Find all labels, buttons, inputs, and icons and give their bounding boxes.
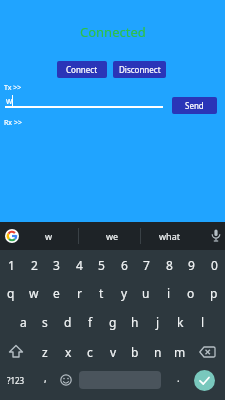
button[interactable]: f [79,309,101,335]
button[interactable] [194,370,215,391]
button[interactable]: a [12,309,34,335]
button[interactable]: m [169,339,191,365]
staticText: v [110,344,117,360]
staticText: a [20,314,27,330]
staticText: e [53,285,60,301]
staticText: Connect [66,64,98,75]
button[interactable]: ?123 [2,367,30,393]
button[interactable]: d [57,309,79,335]
staticText: z [42,344,48,360]
button[interactable]: x [57,339,79,365]
staticText: 2 [31,257,38,273]
staticText: r [77,285,82,301]
staticText: 6 [121,257,128,273]
button[interactable]: k [169,309,191,335]
staticText: Tx >> [4,83,22,93]
button[interactable]: Disconnect [113,61,166,78]
staticText: 1 [8,257,15,273]
button[interactable]: Connect [57,61,107,78]
staticText: s [42,314,48,330]
staticText: w [29,285,39,301]
staticText: f [88,314,93,330]
staticText: ?123 [7,375,25,386]
staticText: we [106,230,119,242]
staticText: g [109,314,117,330]
button[interactable]: r [68,280,90,306]
button[interactable]: 5 [90,252,112,278]
staticText: o [187,285,195,301]
button[interactable]: , [34,365,56,391]
staticText: Rx >> [4,118,22,128]
staticText: x [65,344,72,360]
staticText: y [121,285,128,301]
staticText: c [87,344,93,360]
button[interactable]: n [147,339,169,365]
button[interactable]: . [167,365,189,391]
staticText: 8 [166,257,173,273]
button[interactable]: w [23,280,45,306]
button[interactable] [55,369,77,391]
staticText: 7 [143,257,150,273]
staticText: k [177,314,184,330]
staticText: . [177,371,180,385]
button[interactable]: g [102,309,124,335]
button[interactable]: 1 [0,252,22,278]
staticText: d [64,314,72,330]
staticText: n [154,344,162,360]
staticText: w [6,95,13,106]
staticText: w [45,230,53,242]
staticText: Connected [80,23,146,37]
button[interactable]: l [192,309,214,335]
button[interactable]: t [90,280,112,306]
staticText: j [156,314,160,330]
staticText: p [210,285,218,301]
staticText: , [44,371,47,385]
button[interactable]: y [113,280,135,306]
staticText: h [131,314,139,330]
button[interactable]: 7 [135,252,157,278]
staticText: m [174,344,186,360]
staticText: i [167,285,171,301]
staticText: b [131,344,139,360]
button[interactable]: v [102,339,124,365]
staticText: u [142,285,150,301]
staticText: 9 [188,257,195,273]
button[interactable]: 8 [158,252,180,278]
button[interactable]: c [79,339,101,365]
button[interactable]: s [34,309,56,335]
button[interactable]: b [124,339,146,365]
button[interactable]: i [158,280,180,306]
button[interactable]: what [158,223,180,249]
staticText: 3 [53,257,60,273]
button[interactable]: w [38,223,60,249]
button[interactable] [4,340,28,364]
button[interactable]: e [45,280,67,306]
button[interactable]: o [180,280,202,306]
button[interactable]: q [0,280,22,306]
button[interactable]: u [135,280,157,306]
button[interactable]: we [101,223,123,249]
button[interactable]: 2 [23,252,45,278]
staticText: 0 [211,257,218,273]
staticText: 4 [76,257,83,273]
staticText: what [159,230,180,242]
button[interactable]: h [124,309,146,335]
button[interactable]: Send [172,97,217,114]
staticText: t [99,285,104,301]
staticText: 5 [98,257,105,273]
button[interactable]: 3 [45,252,67,278]
button[interactable]: j [147,309,169,335]
staticText: Disconnect [119,64,161,75]
staticText: Send [185,100,204,111]
button[interactable]: 0 [203,252,225,278]
button[interactable]: 4 [68,252,90,278]
button[interactable]: 9 [180,252,202,278]
button[interactable] [196,341,220,363]
staticText: l [201,314,205,330]
button[interactable]: p [203,280,225,306]
staticText: q [7,285,15,301]
button[interactable]: z [34,339,56,365]
button[interactable]: 6 [113,252,135,278]
